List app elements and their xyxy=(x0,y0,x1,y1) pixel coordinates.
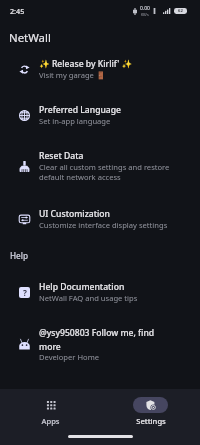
staticText: Set in-app language xyxy=(39,116,111,126)
staticText: Visit my garage 🚪 xyxy=(39,70,106,80)
button[interactable]: Settings xyxy=(133,389,168,426)
other: UI customization xyxy=(19,214,30,225)
staticText: 2:45 xyxy=(10,6,25,16)
staticText: Help Documentation xyxy=(39,281,125,293)
button[interactable]: Sync xyxy=(0,46,200,92)
other: Help documentation xyxy=(19,287,30,298)
other: Developer home xyxy=(19,339,30,350)
staticText: Preferred Language xyxy=(39,104,122,116)
other: Preferred language xyxy=(19,110,30,121)
staticText: NetWall xyxy=(9,30,51,46)
staticText: UI Customization xyxy=(39,208,110,220)
button[interactable]: Developer home xyxy=(0,315,200,374)
staticText: Reset Data xyxy=(39,150,84,162)
staticText: Customize interface display settings xyxy=(39,220,168,230)
staticText: Apps xyxy=(41,416,60,426)
staticText: Help xyxy=(10,250,29,261)
button[interactable]: Help documentation xyxy=(0,269,200,315)
staticText: @ysy950803 Follow me, find more xyxy=(39,327,174,352)
other: Settings xyxy=(146,400,156,410)
staticText: KB/s xyxy=(141,12,149,17)
button[interactable]: Apps xyxy=(33,389,68,426)
button[interactable]: Reset data xyxy=(0,138,200,196)
other: Apps xyxy=(46,400,56,410)
other: Sync xyxy=(19,64,30,75)
staticText: Clear all custom settings and restore de… xyxy=(39,162,174,182)
staticText: ✨ Release by Kirlif' ✨ xyxy=(39,58,133,70)
button[interactable]: Preferred language xyxy=(0,92,200,138)
staticText: NetWall FAQ and usage tips xyxy=(39,293,138,303)
other: Reset data xyxy=(19,161,30,172)
staticText: Settings xyxy=(136,416,166,426)
staticText: 62 xyxy=(178,8,183,14)
staticText: 0.00 xyxy=(140,5,150,12)
button[interactable]: UI customization xyxy=(0,196,200,242)
staticText: ? xyxy=(23,287,27,298)
staticText: Developer Home xyxy=(39,352,100,362)
